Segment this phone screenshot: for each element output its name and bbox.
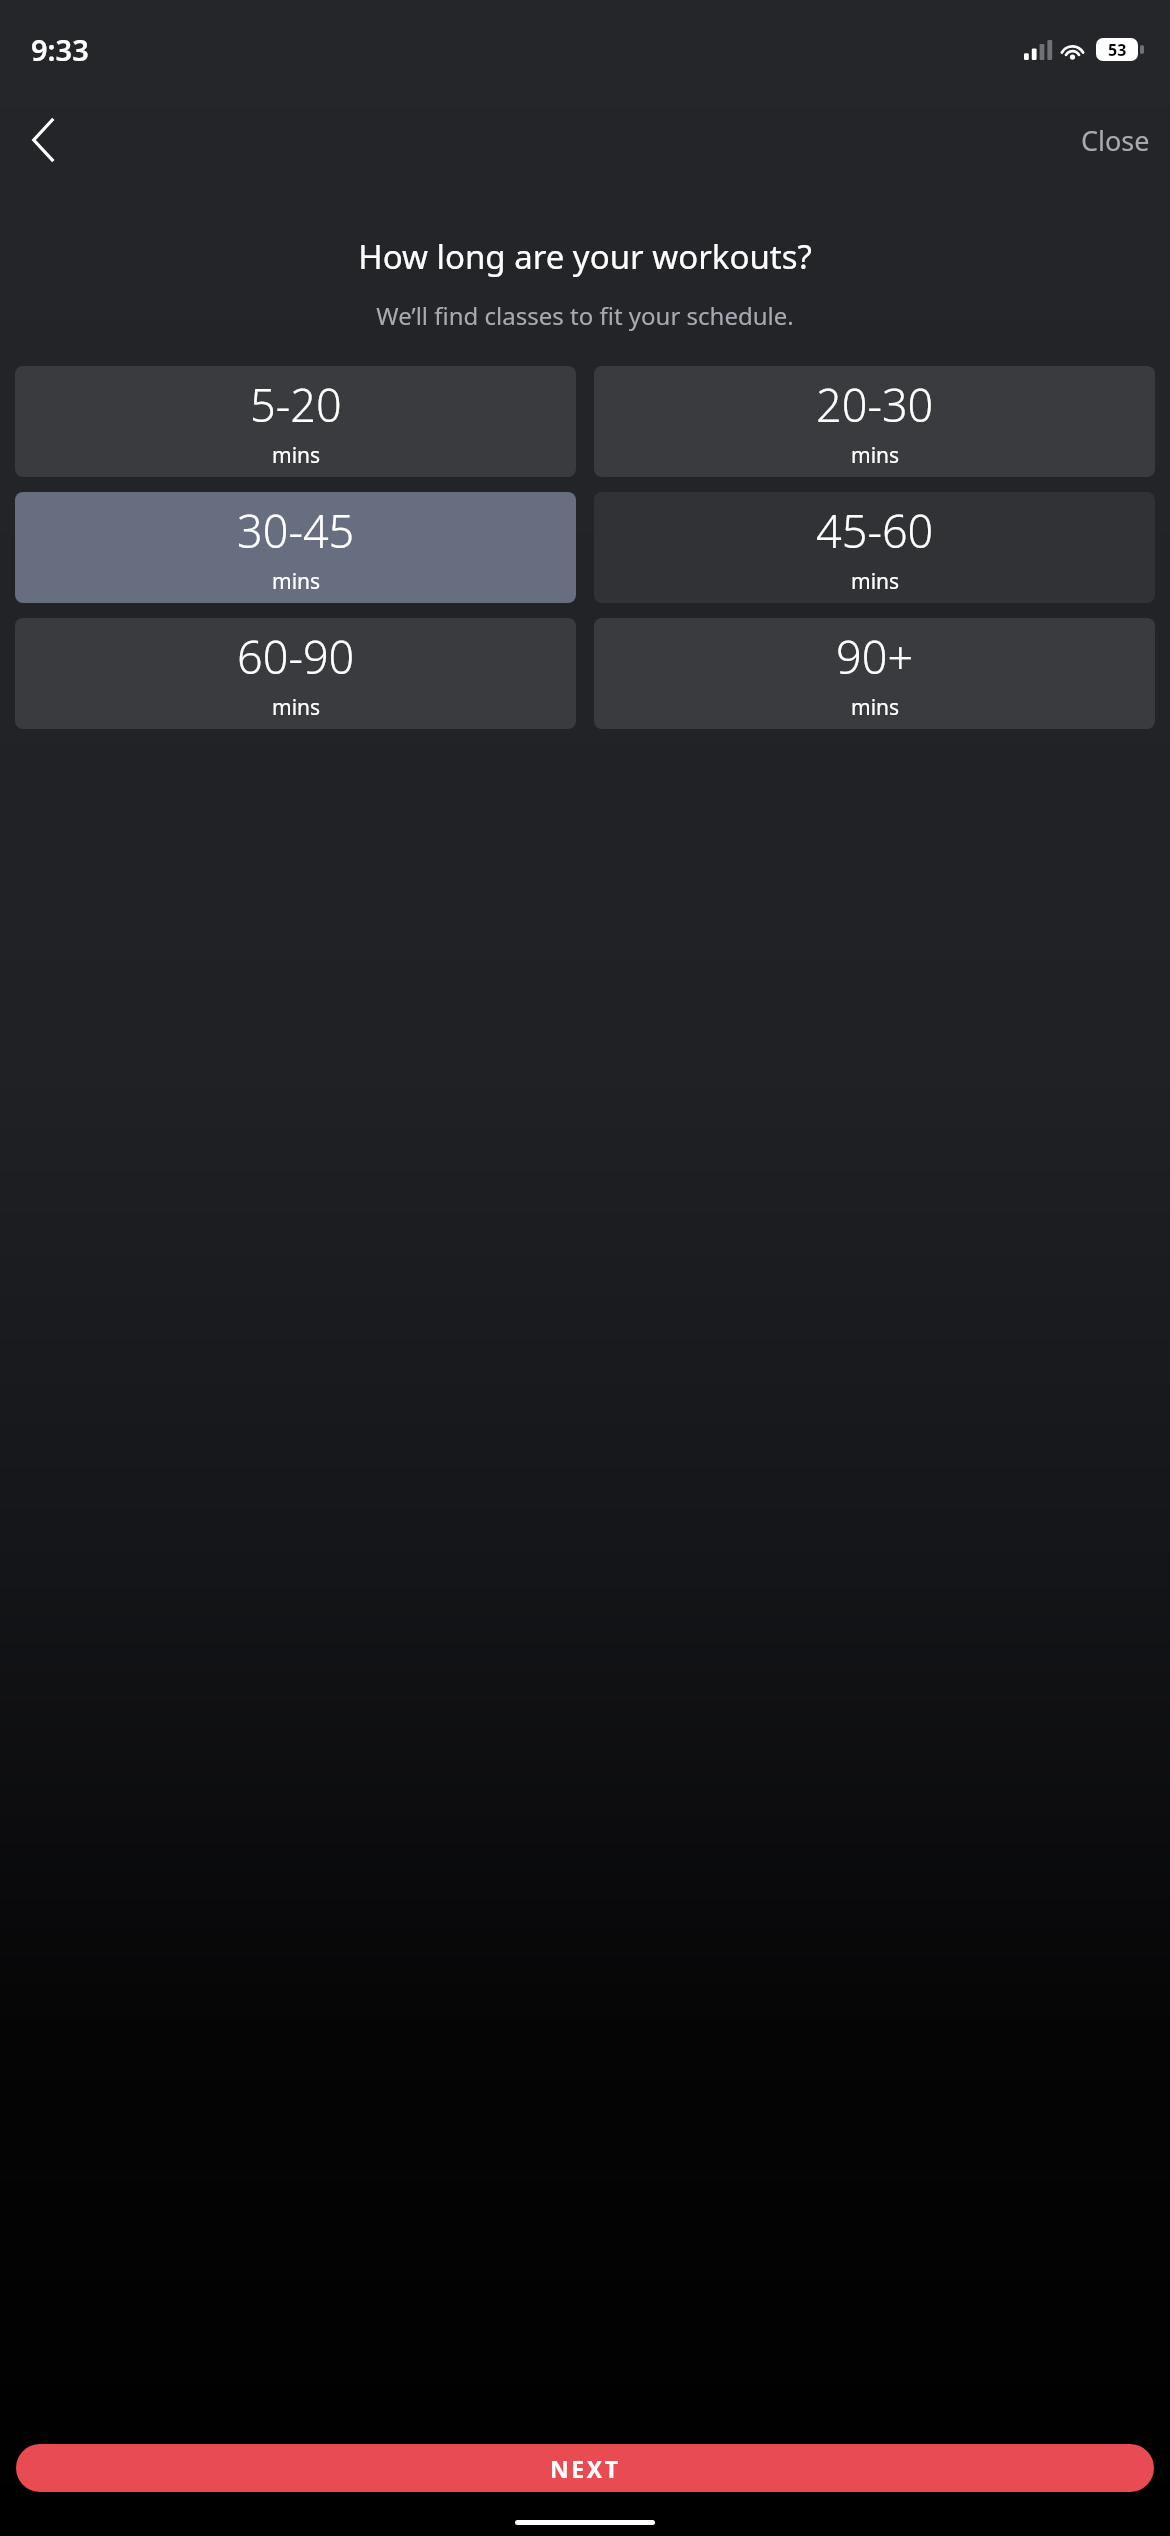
staticText: 45-60	[816, 500, 934, 561]
button[interactable]: 60-90	[15, 618, 576, 729]
staticText: mins	[272, 567, 321, 596]
staticText: 53	[1108, 39, 1127, 61]
staticText: mins	[272, 693, 321, 722]
button[interactable]: 45-60	[594, 492, 1155, 603]
staticText: We’ll find classes to fit your schedule.	[26, 299, 1144, 332]
staticText: How long are your workouts?	[26, 234, 1144, 279]
staticText: 90+	[836, 626, 914, 687]
staticText: NEXT	[550, 2453, 621, 2484]
button[interactable]: Close	[1061, 106, 1170, 175]
button[interactable]: 30-45	[15, 492, 576, 603]
button[interactable]: NEXT	[16, 2444, 1154, 2492]
button[interactable]: 20-30	[594, 366, 1155, 477]
staticText: mins	[851, 567, 900, 596]
staticText: 9:33	[31, 30, 89, 69]
staticText: 5-20	[250, 374, 342, 435]
button[interactable]: Back	[6, 103, 80, 177]
staticText: mins	[851, 441, 900, 470]
button[interactable]: 5-20	[15, 366, 576, 477]
staticText: 60-90	[237, 626, 355, 687]
staticText: 30-45	[237, 500, 355, 561]
staticText: mins	[851, 693, 900, 722]
button[interactable]: 90+	[594, 618, 1155, 729]
staticText: mins	[272, 441, 321, 470]
staticText: Close	[1081, 122, 1150, 159]
staticText: 20-30	[816, 374, 934, 435]
